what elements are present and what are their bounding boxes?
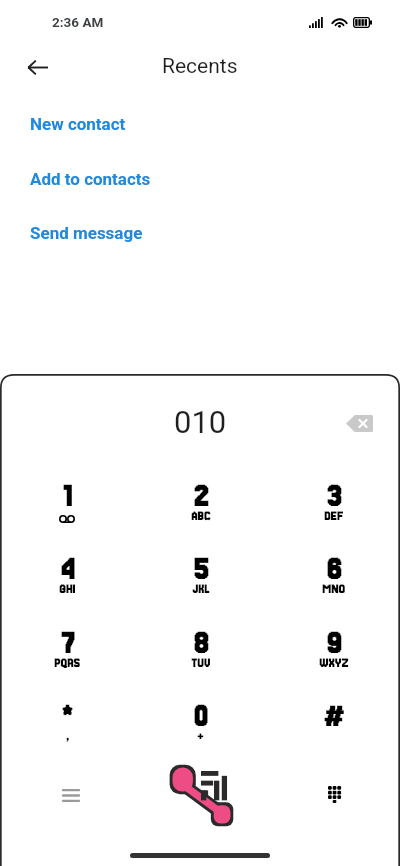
staticText: 2 [193, 480, 209, 512]
button[interactable]: Add to contacts [0, 161, 400, 197]
staticText: ABC [191, 510, 211, 523]
button[interactable]: # [267, 700, 400, 750]
staticText: * [61, 700, 73, 732]
button[interactable]: Send message [0, 215, 400, 251]
staticText: , [66, 730, 69, 743]
button[interactable]: 3 [267, 480, 400, 530]
staticText: 7 [60, 627, 75, 659]
staticText: New contact [30, 114, 126, 134]
staticText: 6 [326, 553, 342, 585]
button[interactable]: New contact [0, 106, 400, 142]
staticText: 9 [326, 627, 342, 659]
button[interactable]: Back [15, 45, 59, 89]
staticText: Recents [162, 54, 238, 79]
button[interactable]: 0 [134, 700, 267, 750]
staticText: 8 [193, 627, 209, 659]
staticText: 3 [326, 480, 342, 512]
button[interactable]: Call [134, 765, 267, 825]
button[interactable]: 4 [0, 553, 134, 603]
button[interactable]: Dialpad [267, 765, 400, 825]
button[interactable]: 2 [134, 480, 267, 530]
staticText: 0 [193, 700, 208, 732]
staticText: 2:36 AM [52, 14, 104, 30]
staticText: Send message [30, 223, 143, 243]
button[interactable]: 5 [134, 553, 267, 603]
button[interactable]: * [0, 700, 134, 750]
button[interactable]: Backspace [337, 401, 381, 445]
staticText: Add to contacts [30, 169, 151, 189]
staticText: DEF [324, 510, 343, 523]
staticText: TUV [191, 657, 211, 670]
button[interactable]: 9 [267, 627, 400, 677]
staticText: PQRS [54, 657, 80, 670]
staticText: 4 [60, 553, 75, 585]
button[interactable]: Call log [0, 765, 134, 825]
staticText: JKL [192, 583, 210, 596]
staticText: GHI [59, 583, 76, 596]
staticText: 1 [62, 480, 73, 512]
button[interactable]: 7 [0, 627, 134, 677]
button[interactable]: 6 [267, 553, 400, 603]
staticText: # [323, 700, 345, 732]
staticText: + [197, 730, 204, 743]
button[interactable]: 8 [134, 627, 267, 677]
staticText: 010 [174, 404, 227, 440]
staticText: 5 [193, 553, 209, 585]
staticText: WXYZ [319, 657, 349, 670]
staticText: MNO [322, 583, 345, 596]
button[interactable]: 1 [0, 480, 134, 530]
